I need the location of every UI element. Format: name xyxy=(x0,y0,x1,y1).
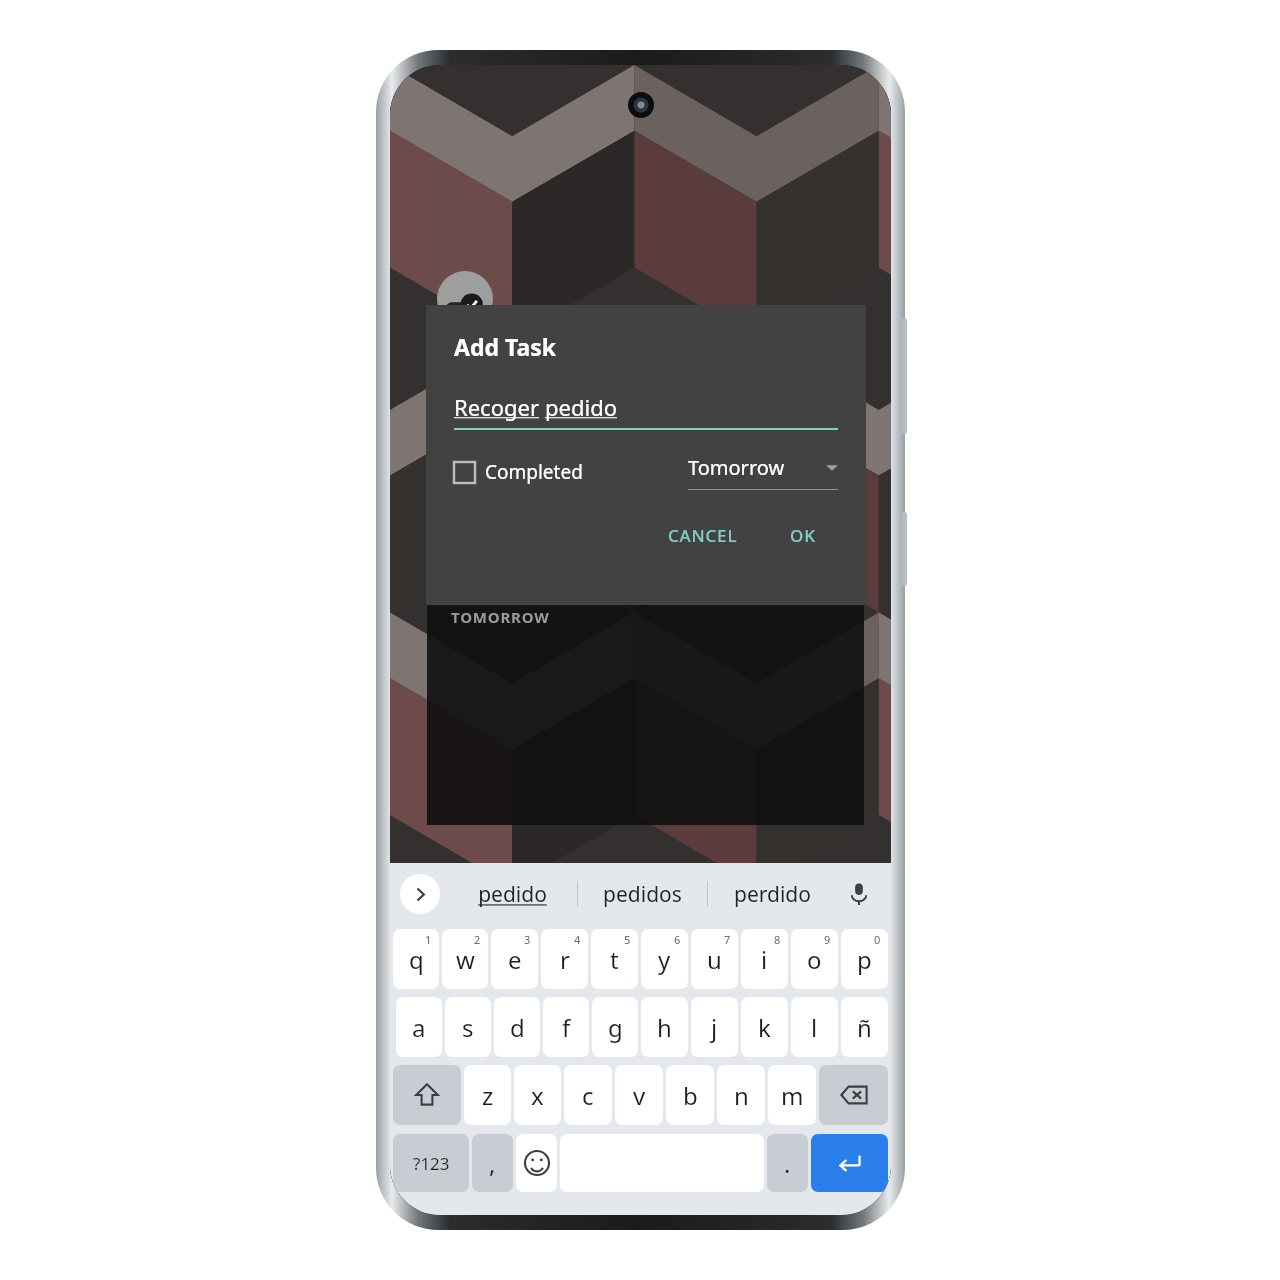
button[interactable]: Backspace xyxy=(819,1065,888,1125)
button[interactable]: w xyxy=(442,929,488,989)
staticText: c xyxy=(582,1079,594,1112)
staticText: pedidos xyxy=(603,880,682,909)
button[interactable]: a xyxy=(396,997,442,1057)
staticText: w xyxy=(456,943,475,976)
button[interactable]: u xyxy=(691,929,738,989)
button[interactable]: b xyxy=(666,1065,714,1125)
staticText: Click on the left edge of a task to quic… xyxy=(463,483,846,530)
staticText: perdido xyxy=(734,880,811,909)
button[interactable]: Recoger xyxy=(454,392,838,430)
button[interactable]: Voice input xyxy=(837,863,881,925)
staticText: ñ xyxy=(857,1011,872,1044)
staticText: j xyxy=(711,1011,718,1044)
button[interactable]: Enter xyxy=(811,1134,888,1192)
staticText: b xyxy=(683,1079,698,1112)
staticText: x xyxy=(531,1079,544,1112)
staticText: e xyxy=(508,943,522,976)
staticText: OK xyxy=(790,524,816,547)
button[interactable]: perdido xyxy=(708,863,837,925)
button[interactable]: ?123 xyxy=(393,1134,469,1192)
staticText: 2 xyxy=(474,932,481,947)
staticText: n xyxy=(734,1079,749,1112)
button[interactable]: y xyxy=(641,929,688,989)
staticText: y xyxy=(658,943,671,976)
staticText: u xyxy=(707,943,722,976)
button[interactable]: v xyxy=(615,1065,663,1125)
button[interactable]: i xyxy=(741,929,788,989)
button[interactable]: c xyxy=(564,1065,612,1125)
staticText: m xyxy=(781,1079,804,1112)
staticText: t xyxy=(610,943,619,976)
button[interactable]: Emoji xyxy=(516,1134,557,1192)
staticText: ?123 xyxy=(413,1152,450,1175)
staticText: 5 xyxy=(624,932,631,947)
staticText: . xyxy=(784,1147,791,1180)
staticText: CANCEL xyxy=(668,524,738,547)
staticText: 4 xyxy=(574,932,581,947)
button[interactable]: g xyxy=(592,997,638,1057)
button[interactable]: d xyxy=(494,997,540,1057)
staticText: 8 xyxy=(774,932,781,947)
button[interactable]: . xyxy=(767,1134,808,1192)
staticText: , xyxy=(489,1147,496,1180)
staticText: i xyxy=(761,943,768,976)
staticText: f xyxy=(562,1011,571,1044)
staticText: TOMORROW xyxy=(451,607,550,627)
button[interactable]: t xyxy=(591,929,638,989)
staticText: 6 xyxy=(674,932,681,947)
staticText: Tomorrow xyxy=(688,454,785,481)
staticText: o xyxy=(807,943,822,976)
staticText: s xyxy=(462,1011,474,1044)
staticText: h xyxy=(657,1011,672,1044)
button[interactable]: m xyxy=(768,1065,816,1125)
button[interactable]: pedidos xyxy=(578,863,707,925)
staticText: d xyxy=(510,1011,525,1044)
button[interactable]: q xyxy=(393,929,439,989)
button[interactable]: p xyxy=(841,929,888,989)
button[interactable]: x xyxy=(514,1065,561,1125)
button[interactable]: e xyxy=(491,929,538,989)
button[interactable]: n xyxy=(717,1065,765,1125)
staticText: 0 xyxy=(874,932,881,947)
staticText: Recoger xyxy=(454,392,545,422)
staticText: k xyxy=(758,1011,771,1044)
button[interactable]: j xyxy=(691,997,738,1057)
staticText: g xyxy=(608,1011,623,1044)
staticText: a xyxy=(412,1011,426,1044)
staticText: pedido xyxy=(545,392,617,422)
staticText: z xyxy=(482,1079,494,1112)
button[interactable]: ñ xyxy=(841,997,888,1057)
button[interactable]: More suggestions xyxy=(400,874,440,914)
button[interactable]: CANCEL xyxy=(658,516,748,555)
staticText: 9 xyxy=(824,932,831,947)
button[interactable]: z xyxy=(464,1065,511,1125)
button[interactable]: You can edit a task by clicking on it xyxy=(451,447,846,469)
button[interactable]: Shift xyxy=(393,1065,461,1125)
staticText: pedido xyxy=(478,880,547,909)
button[interactable]: Tomorrow xyxy=(688,454,838,490)
staticText: q xyxy=(409,943,424,976)
staticText: 3 xyxy=(524,932,531,947)
staticText: p xyxy=(857,943,872,976)
staticText: You can edit a task by clicking on it xyxy=(463,447,731,469)
staticText: v xyxy=(633,1079,646,1112)
button[interactable]: , xyxy=(472,1134,513,1192)
button[interactable]: Completed xyxy=(454,459,583,485)
staticText: l xyxy=(811,1011,818,1044)
staticText: 7 xyxy=(724,932,731,947)
button[interactable]: r xyxy=(541,929,588,989)
button[interactable]: o xyxy=(791,929,838,989)
button[interactable]: s xyxy=(445,997,491,1057)
button[interactable]: OK xyxy=(780,516,826,555)
button[interactable]: h xyxy=(641,997,688,1057)
button[interactable]: l xyxy=(791,997,838,1057)
button[interactable]: pedido xyxy=(448,863,577,925)
button[interactable]: Click on the left edge of a task to quic… xyxy=(451,483,846,530)
staticText: 1 xyxy=(425,932,432,947)
button[interactable]: k xyxy=(741,997,788,1057)
button[interactable]: f xyxy=(543,997,589,1057)
staticText: Add Task xyxy=(454,331,556,362)
